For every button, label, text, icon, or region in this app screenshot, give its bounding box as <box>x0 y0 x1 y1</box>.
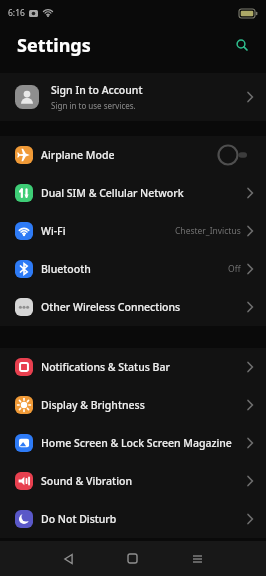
staticText: Chester_Invictus <box>175 225 241 237</box>
staticText: Sound & Vibration <box>41 474 246 488</box>
button[interactable]: Bluetooth <box>0 250 266 288</box>
button[interactable]: Display & Brightness <box>0 386 266 424</box>
staticText: Home Screen & Lock Screen Magazine <box>41 436 246 450</box>
staticText: Wi-Fi <box>41 224 175 238</box>
button[interactable]: Home Screen & Lock Screen Magazine <box>0 424 266 462</box>
button[interactable] <box>165 541 230 576</box>
staticText: Sign in to use services. <box>51 100 136 111</box>
staticText: Display & Brightness <box>41 398 246 412</box>
button[interactable]: Notifications & Status Bar <box>0 348 266 386</box>
staticText: Airplane Mode <box>41 148 217 162</box>
button[interactable] <box>236 39 248 52</box>
staticText: Sign In to Account <box>51 83 143 97</box>
staticText: 6:16 <box>8 7 25 19</box>
button[interactable] <box>217 143 254 167</box>
button[interactable]: Wi-Fi <box>0 212 266 250</box>
staticText: Bluetooth <box>41 262 228 276</box>
button[interactable] <box>36 541 100 576</box>
button[interactable]: Sound & Vibration <box>0 462 266 500</box>
staticText: Settings <box>17 33 91 58</box>
staticText: Dual SIM & Cellular Network <box>41 186 246 200</box>
staticText: Notifications & Status Bar <box>41 360 246 374</box>
staticText: Do Not Disturb <box>41 512 246 526</box>
button[interactable] <box>100 541 165 576</box>
button[interactable]: Do Not Disturb <box>0 500 266 538</box>
button[interactable]: Airplane Mode <box>0 136 266 174</box>
button[interactable]: Other Wireless Connections <box>0 288 266 326</box>
staticText: Off <box>228 263 241 275</box>
button[interactable]: Dual SIM & Cellular Network <box>0 174 266 212</box>
staticText: Other Wireless Connections <box>41 300 246 314</box>
button[interactable]: Sign In to Account <box>0 73 266 121</box>
